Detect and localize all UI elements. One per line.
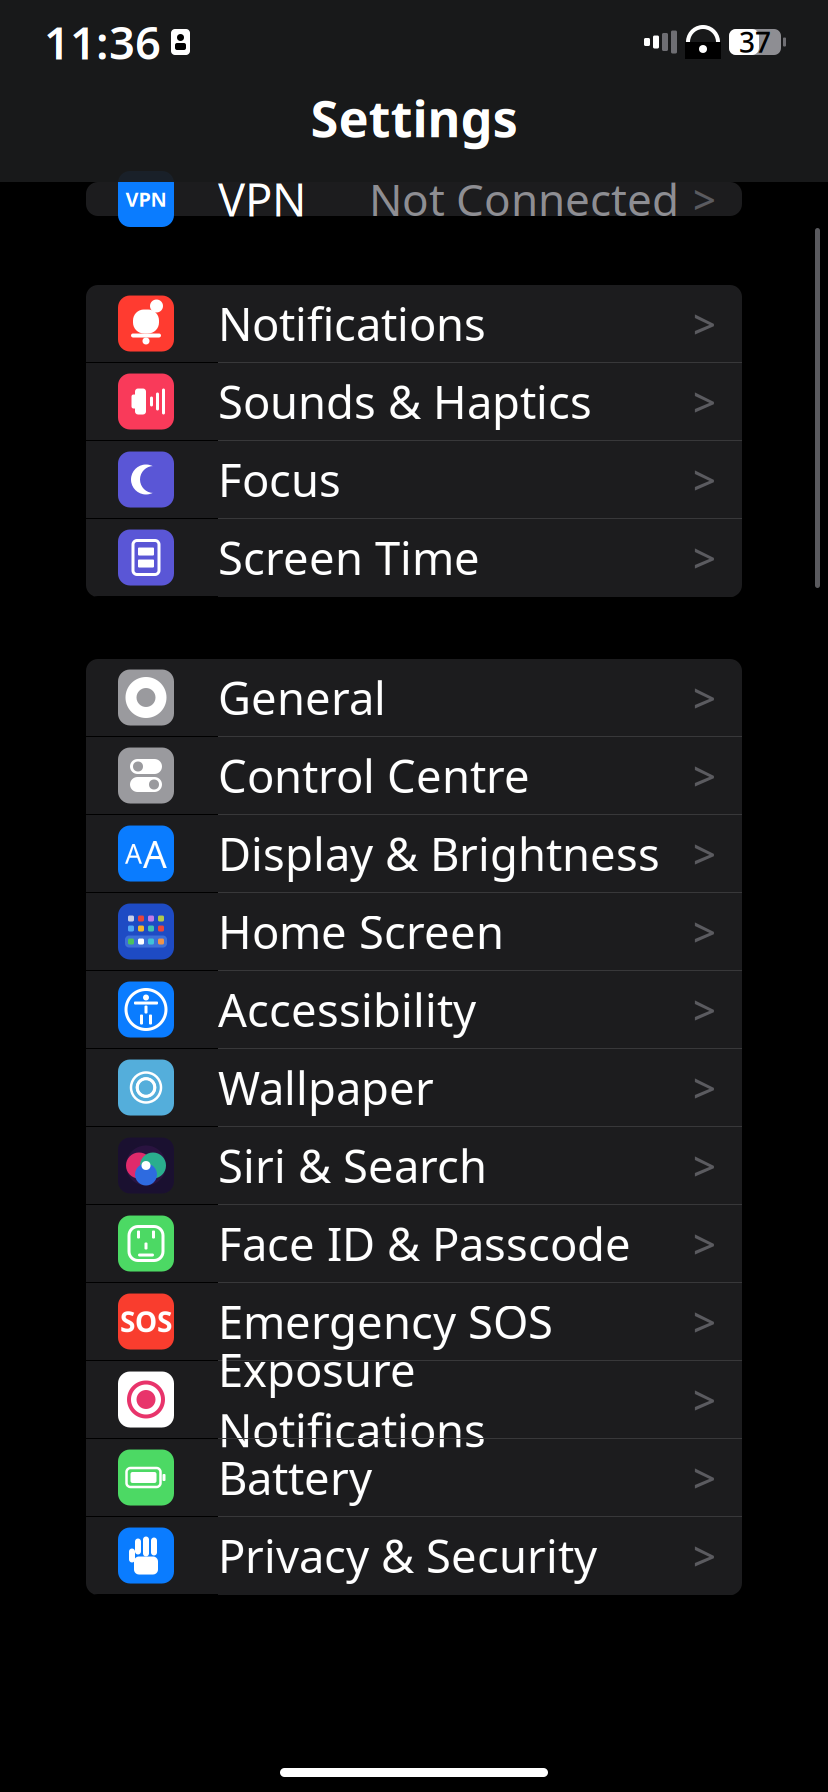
button[interactable]: A <box>86 815 742 893</box>
button[interactable]: Siri & Search <box>86 1127 742 1205</box>
staticText: Display & Brightness <box>218 823 660 884</box>
staticText: VPN <box>125 186 166 212</box>
staticText: > <box>693 531 716 584</box>
staticText: Privacy & Security <box>218 1525 597 1586</box>
staticText: General <box>218 667 386 728</box>
staticText: > <box>693 453 716 506</box>
staticText: Battery <box>218 1447 372 1508</box>
button[interactable]: Face ID & Passcode <box>86 1205 742 1283</box>
staticText: Notifications <box>218 293 486 354</box>
staticText: Screen Time <box>218 527 480 588</box>
staticText: SOS <box>120 1303 172 1340</box>
staticText: > <box>693 749 716 802</box>
staticText: Focus <box>218 449 341 510</box>
staticText: 37 <box>739 23 771 61</box>
staticText: > <box>693 297 716 350</box>
button[interactable]: Home Screen <box>86 893 742 971</box>
staticText: > <box>693 1295 716 1348</box>
staticText: Sounds & Haptics <box>218 371 592 432</box>
button[interactable]: Sounds & Haptics <box>86 363 742 441</box>
staticText: > <box>693 172 716 225</box>
button[interactable]: VPN <box>86 188 742 210</box>
staticText: > <box>693 375 716 428</box>
staticText: Emergency SOS <box>218 1291 553 1352</box>
staticText: Not Connected <box>369 170 679 228</box>
staticText: Accessibility <box>218 979 476 1040</box>
staticText: Siri & Search <box>218 1135 487 1196</box>
button[interactable]: Control Centre <box>86 737 742 815</box>
button[interactable]: SOS <box>86 1283 742 1361</box>
staticText: Settings <box>310 84 517 151</box>
staticText: Face ID & Passcode <box>218 1213 631 1274</box>
staticText: Home Screen <box>218 901 504 962</box>
staticText: Wallpaper <box>218 1057 434 1118</box>
staticText: > <box>693 1139 716 1192</box>
staticText: > <box>693 1373 716 1426</box>
button[interactable]: Privacy & Security <box>86 1517 742 1595</box>
staticText: VPN <box>218 169 306 229</box>
button[interactable]: Settings <box>310 84 517 151</box>
staticText: > <box>693 1451 716 1504</box>
button[interactable]: Battery <box>86 1439 742 1517</box>
button[interactable]: Exposure Notifications <box>86 1361 742 1439</box>
staticText: 11:36 <box>44 12 161 72</box>
staticText: > <box>693 1529 716 1582</box>
staticText: > <box>693 1217 716 1270</box>
staticText: > <box>693 905 716 958</box>
staticText: A <box>143 829 167 878</box>
button[interactable]: Focus <box>86 441 742 519</box>
staticText: Control Centre <box>218 745 530 806</box>
button[interactable]: Screen Time <box>86 519 742 597</box>
staticText: > <box>693 827 716 880</box>
staticText: > <box>693 671 716 724</box>
button[interactable]: Accessibility <box>86 971 742 1049</box>
staticText: Exposure Notifications <box>218 1339 486 1460</box>
staticText: > <box>693 983 716 1036</box>
staticText: > <box>693 1061 716 1114</box>
button[interactable]: Wallpaper <box>86 1049 742 1127</box>
button[interactable]: Notifications <box>86 285 742 363</box>
button[interactable]: General <box>86 659 742 737</box>
staticText: A <box>125 836 142 871</box>
